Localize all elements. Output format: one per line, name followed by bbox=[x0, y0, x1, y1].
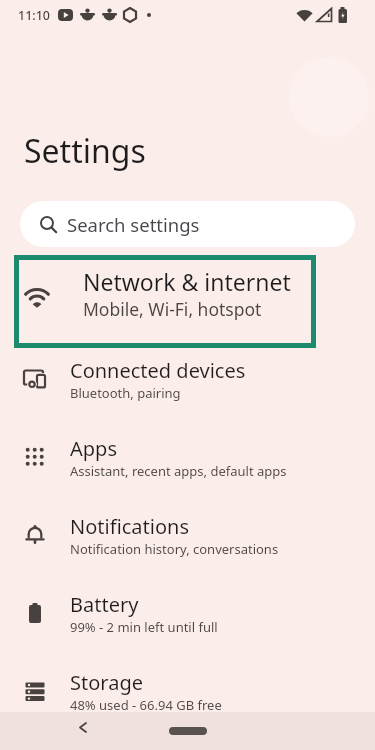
staticText: Settings bbox=[24, 129, 146, 173]
staticText: Apps bbox=[70, 435, 117, 462]
button[interactable]: Apps bbox=[0, 418, 375, 496]
button[interactable]: Notifications bbox=[0, 496, 375, 574]
button[interactable]: Network & internet bbox=[14, 255, 316, 348]
staticText: 11:10 bbox=[18, 7, 51, 24]
staticText: Storage bbox=[70, 669, 143, 696]
button[interactable]: Battery bbox=[0, 574, 375, 652]
staticText: Notifications bbox=[70, 513, 189, 540]
staticText: Notification history, conversations bbox=[70, 540, 279, 558]
staticText: 48% used - 66.94 GB free bbox=[70, 696, 222, 714]
button[interactable]: Search settings bbox=[20, 201, 355, 247]
button[interactable] bbox=[77, 722, 89, 734]
staticText: 99% - 2 min left until full bbox=[70, 618, 218, 636]
button[interactable]: Connected devices bbox=[0, 340, 375, 418]
staticText: Connected devices bbox=[70, 357, 246, 384]
staticText: Assistant, recent apps, default apps bbox=[70, 462, 287, 480]
button[interactable] bbox=[169, 727, 207, 735]
button[interactable]: Storage bbox=[0, 652, 375, 730]
staticText: Battery bbox=[70, 591, 139, 618]
staticText: Bluetooth, pairing bbox=[70, 384, 181, 402]
staticText: Mobile, Wi-Fi, hotspot bbox=[83, 297, 262, 321]
staticText: Network & internet bbox=[83, 266, 291, 297]
staticText: Search settings bbox=[67, 212, 200, 237]
